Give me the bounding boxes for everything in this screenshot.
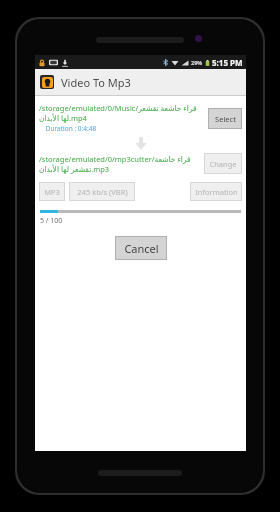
staticText: Duration : 0:4:48 bbox=[39, 124, 97, 133]
staticText: 29% bbox=[191, 59, 203, 66]
staticText: تقشعر لها الأبدان.mp3 bbox=[39, 164, 110, 174]
staticText: Information bbox=[195, 187, 238, 197]
staticText: 245 kb/s (VBR) bbox=[77, 187, 128, 197]
staticText: Video To Mp3 bbox=[61, 75, 131, 90]
other: Convert bbox=[134, 137, 148, 150]
button[interactable]: Select bbox=[209, 109, 241, 128]
staticText: Change bbox=[209, 159, 237, 169]
staticText: 5 / 100 bbox=[40, 216, 63, 226]
button[interactable]: Information bbox=[191, 183, 241, 200]
button[interactable]: Cancel bbox=[116, 237, 166, 259]
staticText: 5:15 PM bbox=[212, 57, 243, 68]
staticText: /storage/emulated/0/mp3cutter/قراء خاشعة bbox=[39, 154, 191, 164]
button[interactable]: Change bbox=[205, 154, 241, 173]
button[interactable]: 245 kb/s (VBR) bbox=[70, 183, 134, 200]
staticText: Select bbox=[215, 114, 236, 124]
staticText: MP3 bbox=[44, 187, 60, 197]
button[interactable]: Video To Mp3 bbox=[35, 69, 246, 95]
staticText: /storage/emulated/0/Music/قراء خاشعة تقش… bbox=[39, 103, 197, 113]
button[interactable]: MP3 bbox=[40, 183, 64, 200]
staticText: Cancel bbox=[124, 241, 159, 256]
staticText: لها الأبدان.mp4 bbox=[39, 113, 87, 123]
